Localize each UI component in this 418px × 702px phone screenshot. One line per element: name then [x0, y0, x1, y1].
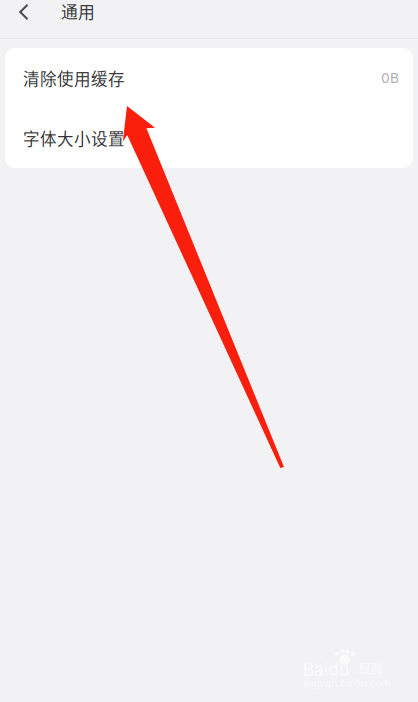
staticText: Baidu [303, 659, 349, 680]
button[interactable]: Back [0, 0, 49, 24]
button[interactable]: 字体大小设置 [5, 108, 413, 168]
button[interactable]: 清除使用缓存 [5, 48, 413, 108]
staticText: 0B [381, 70, 399, 86]
staticText: 字体大小设置 [23, 126, 125, 150]
staticText: 通用 [61, 0, 95, 23]
staticText: 清除使用缓存 [23, 66, 125, 90]
